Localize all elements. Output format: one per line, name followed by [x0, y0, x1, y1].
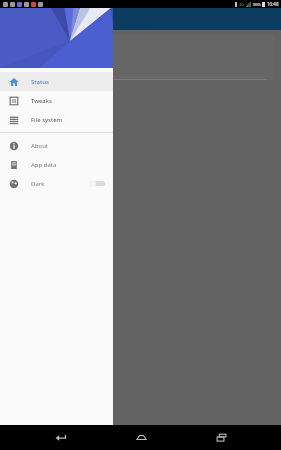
staticText: 96%	[253, 2, 261, 7]
button[interactable]: Back	[40, 425, 80, 450]
button[interactable]: Status	[0, 72, 113, 91]
staticText: App data	[31, 161, 57, 169]
button[interactable]: File system	[0, 110, 113, 129]
staticText: 10:48	[267, 1, 279, 7]
button[interactable]: About	[0, 136, 113, 155]
staticText: 3G	[239, 2, 245, 7]
button[interactable]: Home	[121, 425, 161, 450]
button[interactable]: App data	[0, 155, 113, 174]
staticText: Dark	[31, 180, 45, 188]
staticText: File system	[31, 116, 63, 124]
staticText: Tweaks	[31, 97, 52, 105]
button[interactable]: Recents	[201, 425, 241, 450]
staticText: About	[31, 142, 49, 150]
button[interactable]: Dark	[0, 174, 113, 193]
button[interactable]: Tweaks	[0, 91, 113, 110]
staticText: Status	[31, 78, 50, 86]
